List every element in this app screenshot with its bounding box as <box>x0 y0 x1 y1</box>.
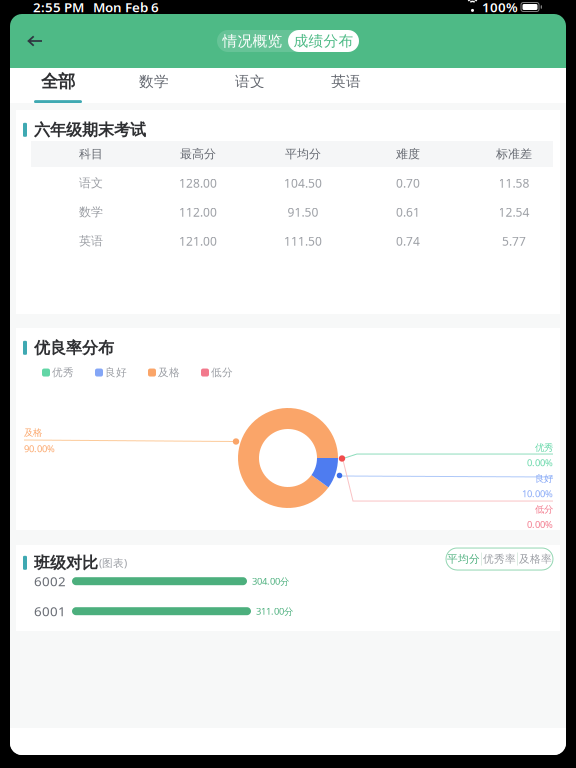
staticText: 11.58 <box>498 175 529 191</box>
staticText: 及格 <box>24 427 42 438</box>
staticText: 6001 <box>34 602 66 620</box>
button[interactable]: 英语 <box>298 68 394 103</box>
staticText: 情况概览 <box>222 32 282 50</box>
button[interactable]: 语文 <box>202 68 298 103</box>
button[interactable]: 全部 <box>10 68 106 103</box>
button[interactable]: Back <box>17 24 53 58</box>
staticText: 304.00分 <box>252 575 289 587</box>
staticText: 121.00 <box>179 233 217 249</box>
staticText: 平均分 <box>285 147 321 161</box>
staticText: 311.00分 <box>256 605 293 617</box>
button[interactable]: 情况概览 <box>217 30 288 52</box>
staticText: 0.00% <box>527 518 553 531</box>
staticText: 语文 <box>235 72 265 90</box>
staticText: 90.00% <box>24 442 55 455</box>
staticText: 优秀 <box>52 366 74 379</box>
button[interactable]: 优秀率 <box>482 548 517 570</box>
staticText: 111.50 <box>284 233 322 249</box>
staticText: 平均分 <box>447 552 480 565</box>
staticText: 标准差 <box>496 147 532 161</box>
staticText: 2:55 PM <box>33 0 84 16</box>
button[interactable]: 成绩分布 <box>288 30 359 52</box>
staticText: 数学 <box>79 205 103 219</box>
button[interactable]: 数学 <box>106 68 202 103</box>
staticText: 班级对比 <box>34 553 98 573</box>
staticText: 全部 <box>41 71 75 92</box>
staticText: 128.00 <box>179 175 217 191</box>
staticText: 100% <box>482 0 518 16</box>
staticText: 0.00% <box>527 456 553 469</box>
staticText: 优良率分布 <box>34 338 114 358</box>
staticText: 104.50 <box>284 175 322 191</box>
staticText: 6002 <box>34 572 66 590</box>
staticText: 91.50 <box>287 204 318 220</box>
staticText: 0.61 <box>396 204 420 220</box>
staticText: 及格率 <box>519 552 552 565</box>
staticText: 语文 <box>79 176 103 190</box>
staticText: 数学 <box>139 72 169 90</box>
staticText: 0.70 <box>396 175 420 191</box>
staticText: (图表) <box>99 556 127 570</box>
staticText: 科目 <box>79 147 103 161</box>
staticText: 良好 <box>535 473 553 484</box>
staticText: 良好 <box>105 366 127 379</box>
staticText: 112.00 <box>179 204 217 220</box>
staticText: 优秀 <box>535 442 553 453</box>
staticText: 5.77 <box>502 233 526 249</box>
button[interactable]: 及格率 <box>518 548 553 570</box>
staticText: 低分 <box>211 366 233 379</box>
staticText: 最高分 <box>180 147 216 161</box>
staticText: 英语 <box>79 234 103 248</box>
staticText: 及格 <box>158 366 180 379</box>
staticText: 0.74 <box>396 233 420 249</box>
staticText: 成绩分布 <box>293 32 353 50</box>
button[interactable]: 平均分 <box>446 548 481 570</box>
staticText: 优秀率 <box>483 552 516 565</box>
staticText: 英语 <box>331 72 361 90</box>
staticText: 难度 <box>396 147 420 161</box>
staticText: 六年级期末考试 <box>34 120 146 140</box>
staticText: Mon Feb 6 <box>93 0 159 16</box>
staticText: 10.00% <box>522 487 553 500</box>
staticText: 低分 <box>535 504 553 515</box>
staticText: 12.54 <box>498 204 529 220</box>
